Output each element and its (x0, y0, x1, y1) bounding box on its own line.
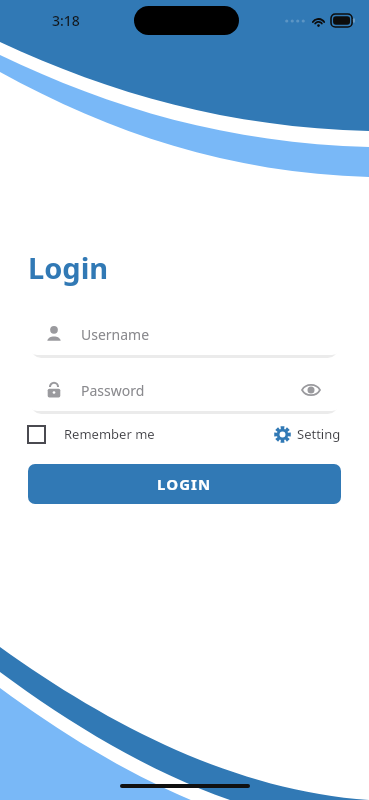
button[interactable]: Show password (298, 377, 324, 403)
button[interactable]: Remember me (28, 425, 155, 443)
button[interactable]: LOGIN (28, 464, 341, 504)
button[interactable]: Username (28, 313, 341, 355)
staticText: Remember me (64, 425, 155, 443)
staticText: Username (81, 325, 150, 344)
button[interactable]: Setting (274, 425, 341, 443)
button[interactable]: Password (28, 369, 341, 411)
staticText: 3:18 (52, 11, 80, 30)
staticText: LOGIN (157, 474, 212, 494)
staticText: Password (81, 381, 145, 400)
staticText: Setting (297, 425, 341, 443)
staticText: Login (28, 248, 109, 287)
